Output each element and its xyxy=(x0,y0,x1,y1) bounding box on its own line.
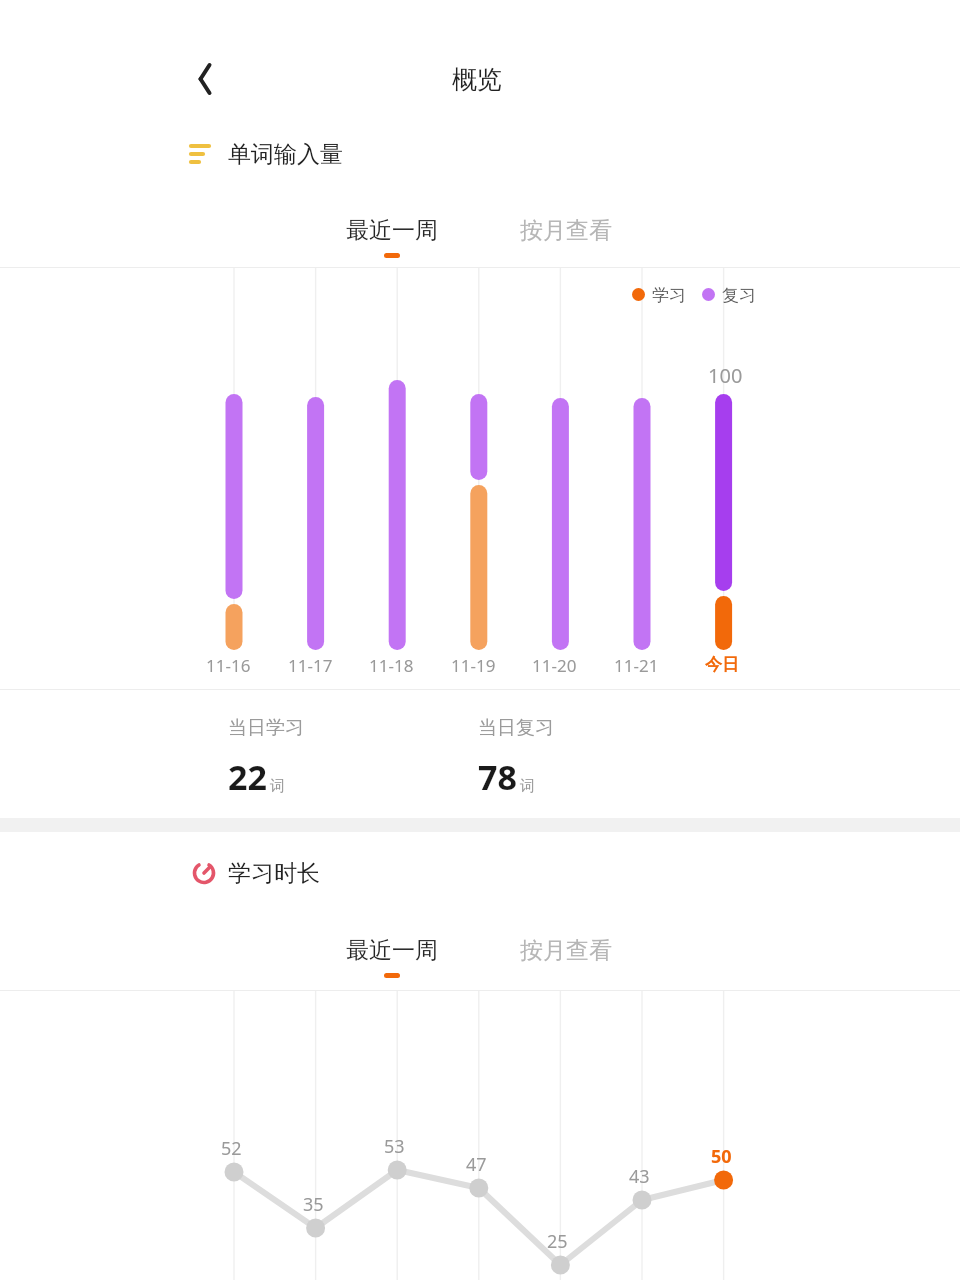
staticText: 最近一周 xyxy=(346,936,438,965)
button[interactable]: 按月查看 xyxy=(514,936,618,965)
staticText: 11-16 xyxy=(206,654,251,677)
staticText: 词 xyxy=(270,777,285,796)
staticText: 学习 xyxy=(652,285,686,306)
staticText: 11-17 xyxy=(288,654,333,677)
staticText: 22 xyxy=(228,754,267,800)
staticText: 11-18 xyxy=(369,654,414,677)
staticText: 概览 xyxy=(452,64,502,95)
staticText: 100 xyxy=(708,362,743,389)
staticText: 学习时长 xyxy=(228,859,320,888)
button[interactable]: 按月查看 xyxy=(514,216,618,245)
button[interactable]: Back xyxy=(176,50,234,108)
staticText: 按月查看 xyxy=(520,216,612,245)
staticText: 25 xyxy=(547,1229,568,1254)
staticText: 47 xyxy=(466,1152,487,1177)
staticText: 35 xyxy=(303,1192,324,1217)
button[interactable]: 最近一周 xyxy=(340,216,444,258)
staticText: 11-19 xyxy=(451,654,496,677)
staticText: 最近一周 xyxy=(346,216,438,245)
staticText: 11-20 xyxy=(532,654,577,677)
staticText: 11-21 xyxy=(614,654,659,677)
staticText: 词 xyxy=(520,777,535,796)
staticText: 53 xyxy=(384,1134,405,1159)
staticText: 按月查看 xyxy=(520,936,612,965)
staticText: 当日复习 xyxy=(478,716,554,740)
staticText: 43 xyxy=(629,1164,650,1189)
staticText: 复习 xyxy=(722,285,756,306)
button[interactable]: 最近一周 xyxy=(340,936,444,978)
staticText: 78 xyxy=(478,754,517,800)
staticText: 50 xyxy=(711,1144,732,1169)
staticText: 单词输入量 xyxy=(228,140,343,169)
staticText: 52 xyxy=(221,1136,242,1161)
staticText: 当日学习 xyxy=(228,716,304,740)
staticText: 今日 xyxy=(705,654,739,675)
